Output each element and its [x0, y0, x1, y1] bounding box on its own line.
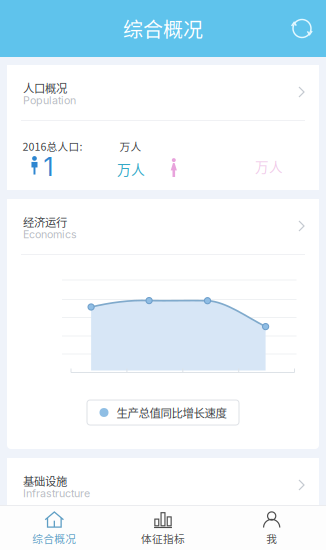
staticText: 2016总人口: — [22, 138, 82, 154]
staticText: 综合概况 — [123, 14, 203, 43]
staticText: 综合概况 — [32, 531, 76, 546]
staticText: Infrastructure — [23, 487, 90, 500]
button[interactable]: 人口概况 — [7, 65, 319, 120]
button[interactable]: 经济运行 — [7, 199, 319, 254]
button[interactable]: Refresh — [280, 9, 326, 47]
staticText: 万人 — [117, 159, 145, 179]
button[interactable]: 体征指标 — [109, 505, 217, 550]
staticText: 体征指标 — [141, 531, 185, 546]
staticText: 生产总值同比增长速度 — [116, 404, 226, 421]
button[interactable]: 基础设施 — [7, 458, 319, 513]
staticText: 我 — [266, 531, 277, 546]
button[interactable]: 综合概况 — [0, 505, 109, 550]
button[interactable]: 我 — [217, 505, 326, 550]
staticText: 基础设施 — [23, 472, 67, 489]
staticText: Population — [23, 94, 76, 107]
staticText: 1 — [43, 151, 53, 182]
staticText: 经济运行 — [23, 213, 67, 230]
staticText: 人口概况 — [23, 79, 67, 96]
staticText: 万人 — [255, 156, 283, 176]
staticText: 万人 — [119, 138, 141, 154]
staticText: Economics — [23, 228, 77, 241]
